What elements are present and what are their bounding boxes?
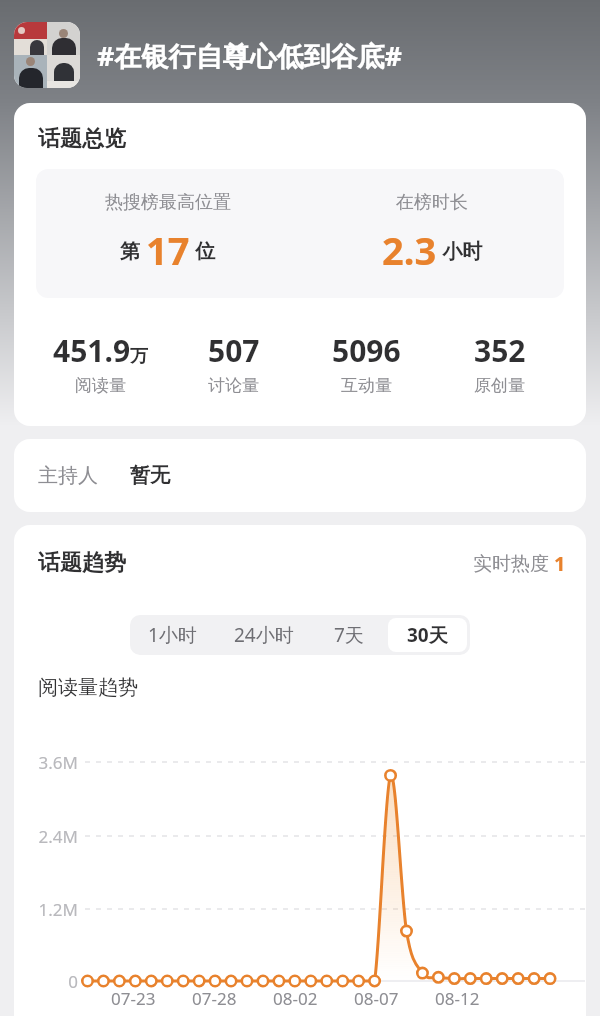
staticText: 暂无: [130, 463, 170, 488]
button[interactable]: 热搜榜最高位置: [36, 191, 300, 276]
staticText: 08-02: [273, 987, 318, 1010]
staticText: 07-23: [111, 987, 156, 1010]
button[interactable]: 在榜时长: [300, 191, 564, 276]
button[interactable]: 24小时: [218, 618, 310, 652]
staticText: 17: [146, 224, 190, 276]
button[interactable]: 30天: [388, 618, 467, 652]
staticText: 1.2M: [26, 898, 78, 921]
staticText: 2.4M: [26, 825, 78, 848]
staticText: 30天: [407, 622, 448, 648]
staticText: 1: [554, 550, 566, 577]
staticText: 1小时: [148, 622, 197, 648]
button[interactable]: 507: [167, 330, 300, 396]
staticText: 热搜榜最高位置: [105, 191, 231, 214]
staticText: 5096: [332, 330, 401, 371]
staticText: 话题总览: [38, 125, 126, 153]
staticText: 互动量: [341, 375, 392, 396]
staticText: 0: [26, 970, 78, 993]
staticText: 507: [208, 330, 260, 371]
staticText: 实时热度: [473, 550, 554, 576]
staticText: 3.6M: [26, 751, 78, 774]
button[interactable]: 352: [433, 330, 566, 396]
button[interactable]: 主持人: [14, 439, 586, 512]
staticText: 讨论量: [208, 375, 259, 396]
staticText: 阅读量: [75, 375, 126, 396]
staticText: 451.9万: [53, 330, 149, 371]
staticText: 主持人: [38, 463, 98, 488]
staticText: 24小时: [234, 622, 294, 648]
button[interactable]: [14, 22, 80, 88]
staticText: 2.3: [382, 224, 437, 276]
staticText: 08-12: [435, 987, 480, 1010]
staticText: 阅读量趋势: [38, 675, 138, 700]
staticText: 小时: [437, 237, 483, 264]
button[interactable]: 451.9万: [34, 330, 167, 396]
staticText: 08-07: [354, 987, 399, 1010]
staticText: 第: [120, 237, 146, 264]
button[interactable]: 7天: [316, 618, 382, 652]
staticText: 话题趋势: [38, 549, 126, 577]
button[interactable]: 1小时: [133, 618, 212, 652]
button[interactable]: 5096: [300, 330, 433, 396]
staticText: #在银行自尊心低到谷底#: [97, 37, 402, 74]
staticText: 7天: [334, 622, 364, 648]
staticText: 原创量: [474, 375, 525, 396]
staticText: 在榜时长: [396, 191, 468, 214]
staticText: 位: [190, 237, 216, 264]
button[interactable]: #在银行自尊心低到谷底#: [14, 22, 586, 88]
staticText: 07-28: [192, 987, 237, 1010]
staticText: 352: [474, 330, 526, 371]
